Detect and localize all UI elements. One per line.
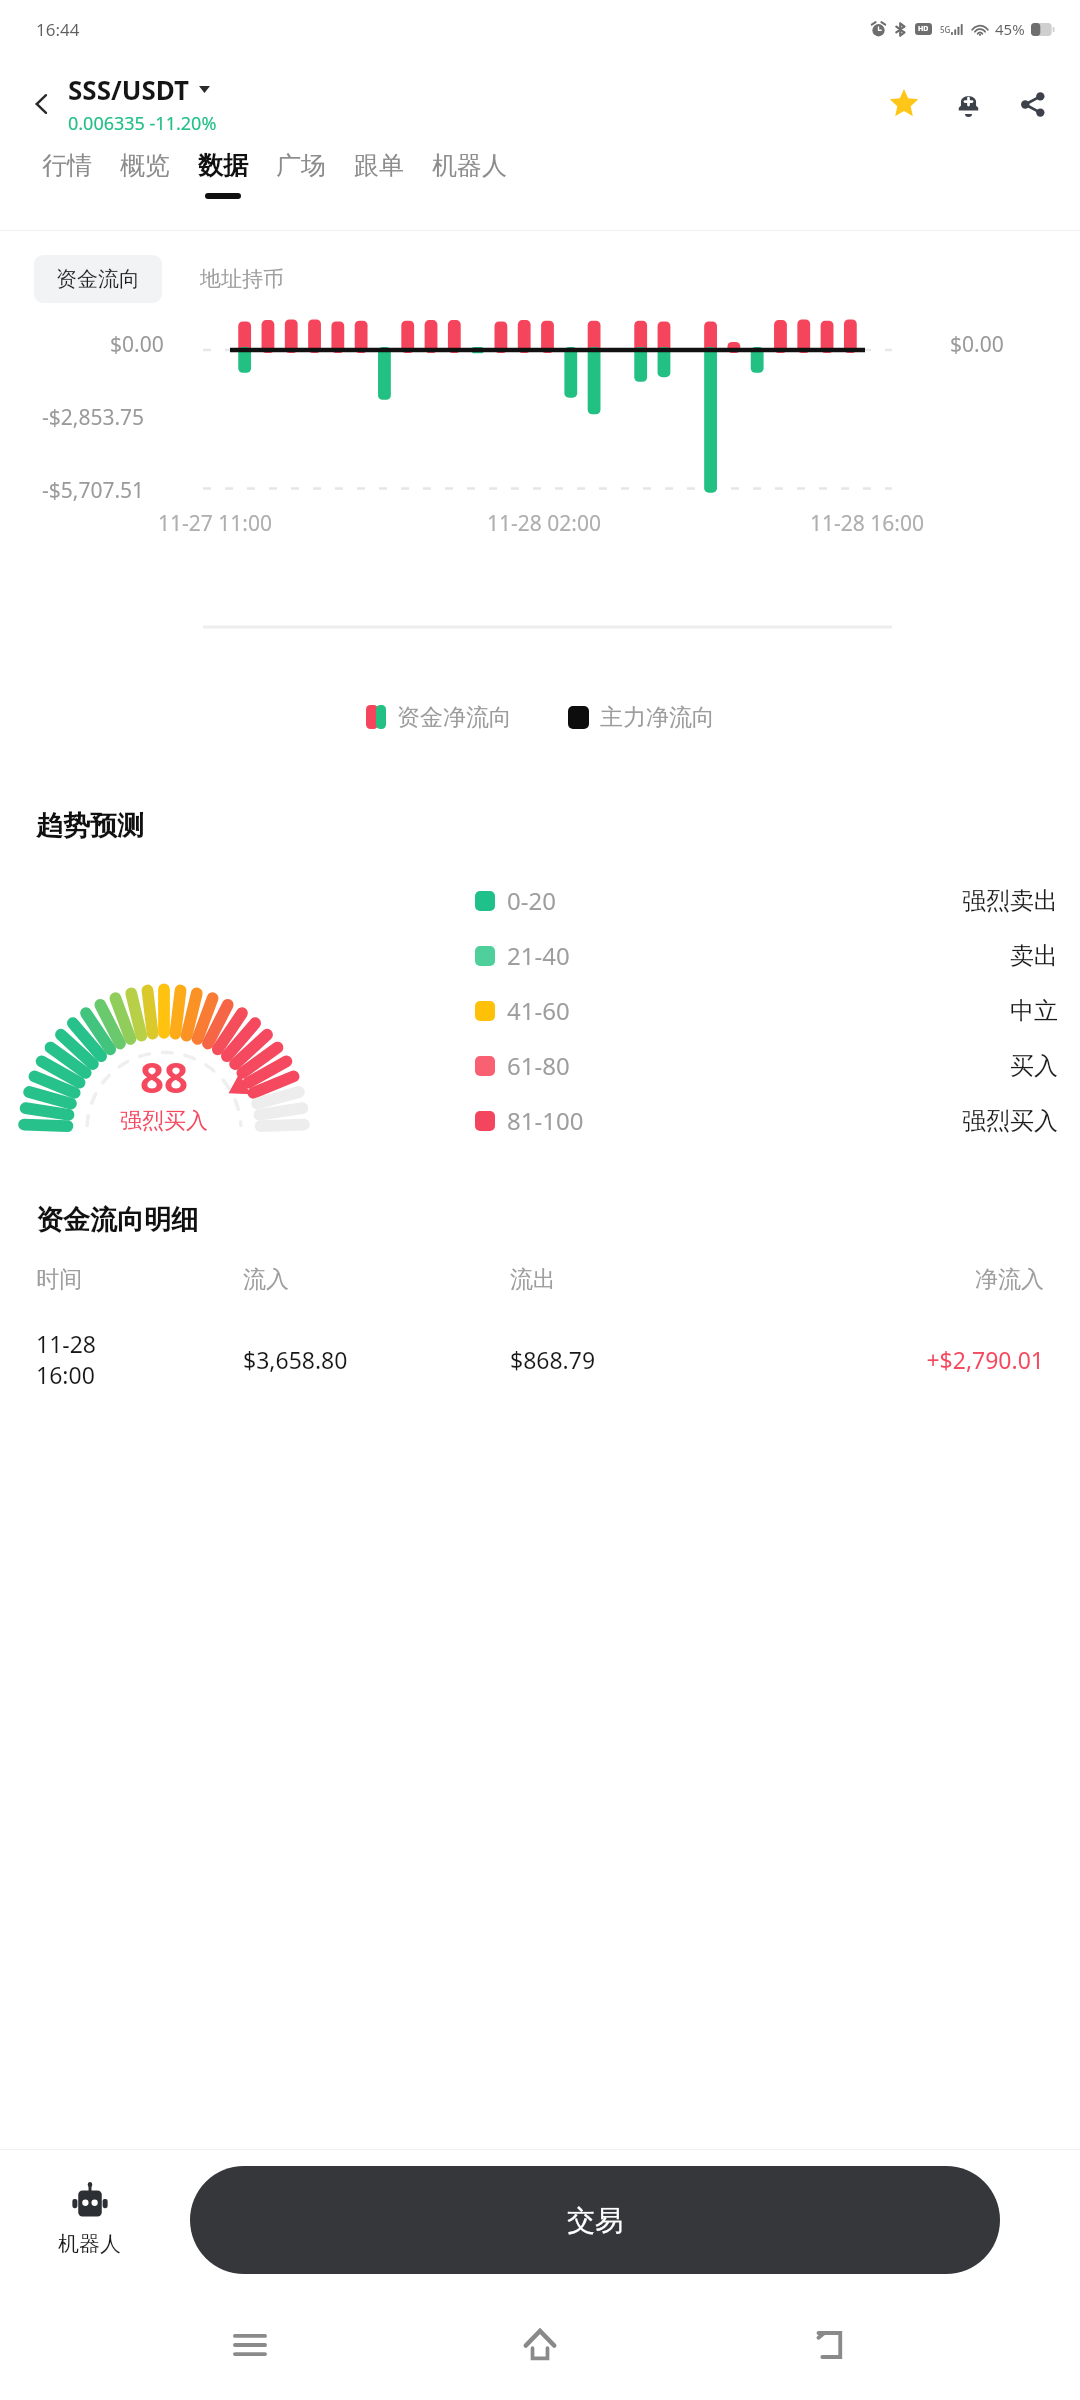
staticText: $868.79: [510, 1344, 777, 1375]
staticText: 概览: [120, 150, 170, 181]
staticText: 16:44: [36, 18, 80, 41]
staticText: 0-20: [507, 884, 556, 917]
button[interactable]: Add alert: [944, 80, 992, 128]
button[interactable]: 概览: [106, 150, 184, 193]
staticText: $0.00: [950, 330, 1004, 359]
staticText: 净流入: [777, 1265, 1044, 1294]
staticText: 41-60: [507, 994, 570, 1027]
button[interactable]: Recents: [210, 2305, 290, 2385]
staticText: 11-27 11:00: [158, 509, 272, 538]
staticText: 强烈买入: [962, 1106, 1058, 1136]
button[interactable]: 81-100: [475, 1093, 1058, 1148]
staticText: $3,658.80: [243, 1344, 510, 1375]
staticText: SSS/USDT: [68, 72, 190, 107]
staticText: 数据: [198, 150, 248, 181]
staticText: 地址持币: [200, 266, 284, 292]
staticText: 资金流向明细: [36, 1203, 198, 1237]
staticText: 45%: [995, 19, 1025, 39]
staticText: 11-28 16:00: [810, 509, 924, 538]
staticText: 卖出: [1010, 941, 1058, 971]
button[interactable]: 地址持币: [178, 255, 306, 303]
staticText: 流入: [243, 1265, 510, 1294]
staticText: 强烈买入: [120, 1107, 208, 1135]
staticText: 跟单: [354, 150, 404, 181]
button[interactable]: Favorite: [880, 80, 928, 128]
button[interactable]: Back: [20, 82, 64, 126]
staticText: 61-80: [507, 1049, 570, 1082]
button[interactable]: 资金流向: [34, 255, 162, 303]
staticText: 中立: [1010, 996, 1058, 1026]
staticText: 交易: [567, 2203, 623, 2238]
staticText: 买入: [1010, 1051, 1058, 1081]
staticText: 16:00: [36, 1359, 95, 1390]
staticText: 时间: [36, 1265, 243, 1294]
staticText: 机器人: [58, 2231, 121, 2257]
staticText: 11-28 02:00: [487, 509, 601, 538]
staticText: 资金流向: [56, 266, 140, 292]
staticText: 机器人: [432, 150, 507, 181]
staticText: -$5,707.51: [42, 476, 145, 505]
button[interactable]: 机器人: [418, 150, 521, 193]
button[interactable]: 数据: [184, 150, 262, 199]
staticText: 5G: [940, 24, 951, 35]
staticText: 流出: [510, 1265, 777, 1294]
staticText: 0.006335 -11.20%: [68, 111, 217, 136]
button[interactable]: 21-40: [475, 928, 1058, 983]
staticText: 88: [140, 1048, 189, 1105]
button[interactable]: Back: [790, 2305, 870, 2385]
button[interactable]: 跟单: [340, 150, 418, 193]
button[interactable]: 行情: [28, 150, 106, 193]
button[interactable]: 61-80: [475, 1038, 1058, 1093]
staticText: 21-40: [507, 939, 570, 972]
staticText: 资金净流向: [397, 703, 512, 732]
staticText: $0.00: [110, 330, 164, 359]
button[interactable]: 交易: [190, 2166, 1000, 2274]
staticText: 广场: [276, 150, 326, 181]
staticText: 趋势预测: [36, 809, 144, 843]
staticText: 81-100: [507, 1104, 584, 1137]
staticText: 11-28: [36, 1328, 97, 1359]
button[interactable]: 11-28: [36, 1328, 1044, 1390]
staticText: -$2,853.75: [42, 403, 145, 432]
staticText: 强烈卖出: [962, 886, 1058, 916]
staticText: HD: [918, 24, 929, 34]
button[interactable]: 机器人: [58, 2183, 121, 2257]
button[interactable]: Share: [1008, 80, 1056, 128]
staticText: 主力净流向: [600, 703, 715, 732]
button[interactable]: 0-20: [475, 873, 1058, 928]
staticText: +$2,790.01: [777, 1344, 1044, 1375]
button[interactable]: 广场: [262, 150, 340, 193]
button[interactable]: Home: [500, 2305, 580, 2385]
button[interactable]: 41-60: [475, 983, 1058, 1038]
staticText: 行情: [42, 150, 92, 181]
